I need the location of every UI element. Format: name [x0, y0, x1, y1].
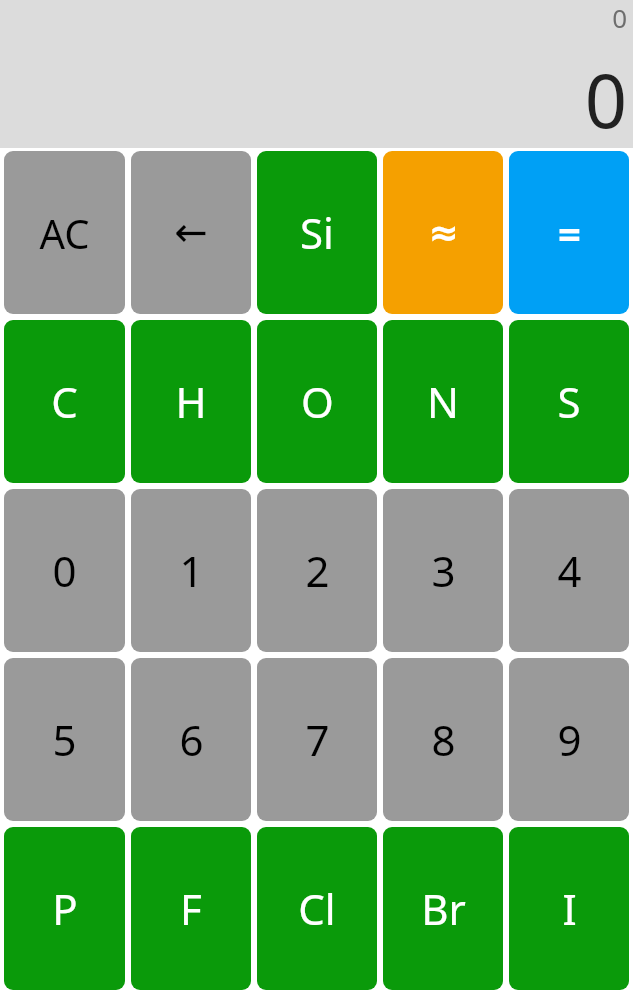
button[interactable]: 2: [257, 489, 377, 652]
button[interactable]: Br: [383, 827, 503, 990]
staticText: Br: [421, 880, 466, 937]
staticText: 0: [612, 0, 627, 35]
staticText: 8: [431, 711, 456, 768]
staticText: N: [427, 373, 459, 430]
staticText: 1: [179, 542, 204, 599]
staticText: 6: [179, 711, 204, 768]
staticText: Cl: [298, 880, 336, 937]
staticText: 0: [584, 49, 627, 148]
button[interactable]: 7: [257, 658, 377, 821]
button[interactable]: I: [509, 827, 629, 990]
button[interactable]: H: [131, 320, 251, 483]
button[interactable]: Backspace: [131, 151, 251, 314]
staticText: 3: [431, 542, 456, 599]
button[interactable]: N: [383, 320, 503, 483]
staticText: I: [562, 880, 577, 937]
button[interactable]: 1: [131, 489, 251, 652]
button[interactable]: F: [131, 827, 251, 990]
staticText: C: [51, 373, 78, 430]
button[interactable]: O: [257, 320, 377, 483]
staticText: H: [175, 373, 207, 430]
staticText: ≈: [428, 212, 459, 254]
button[interactable]: 5: [4, 658, 125, 821]
button[interactable]: Cl: [257, 827, 377, 990]
staticText: 2: [305, 542, 330, 599]
staticText: P: [52, 880, 78, 937]
button[interactable]: S: [509, 320, 629, 483]
staticText: 7: [305, 711, 330, 768]
staticText: F: [180, 880, 202, 937]
button[interactable]: Approximate: [383, 151, 503, 314]
button[interactable]: C: [4, 320, 125, 483]
button[interactable]: P: [4, 827, 125, 990]
staticText: =: [558, 206, 581, 260]
button[interactable]: Equals: [509, 151, 629, 314]
staticText: 9: [557, 711, 582, 768]
button[interactable]: 3: [383, 489, 503, 652]
staticText: S: [557, 373, 581, 430]
button[interactable]: Si: [257, 151, 377, 314]
button[interactable]: 0: [4, 489, 125, 652]
staticText: Si: [300, 204, 334, 261]
button[interactable]: 4: [509, 489, 629, 652]
staticText: 5: [52, 711, 77, 768]
staticText: O: [301, 373, 334, 430]
button[interactable]: 9: [509, 658, 629, 821]
button[interactable]: AC: [4, 151, 125, 314]
staticText: 0: [52, 542, 77, 599]
button[interactable]: 8: [383, 658, 503, 821]
button[interactable]: 6: [131, 658, 251, 821]
staticText: ←: [174, 209, 208, 256]
staticText: 4: [557, 542, 582, 599]
staticText: AC: [39, 206, 90, 260]
